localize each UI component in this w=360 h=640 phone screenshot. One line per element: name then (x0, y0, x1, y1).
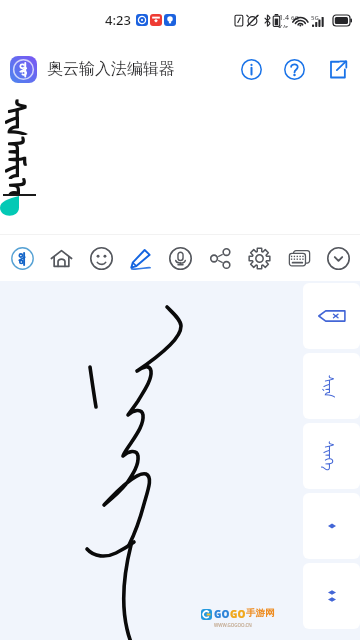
staticText: WWW.GOGOO.CN (214, 622, 252, 628)
button[interactable]: Keyboard (281, 240, 317, 276)
button[interactable]: Suggestion 2 (303, 423, 360, 489)
staticText: 手游网 (246, 607, 275, 619)
button[interactable]: App icon (10, 56, 37, 83)
staticText: ᠰᠢᠨ (6, 98, 46, 134)
button[interactable]: Collapse (320, 240, 356, 276)
button[interactable]: Emoji (83, 240, 119, 276)
staticText: 1.4 (279, 13, 289, 23)
staticText: 6G (291, 14, 299, 22)
staticText: GO (214, 607, 230, 621)
staticText: ᠰᠢᠨᠡ (321, 375, 343, 398)
button[interactable]: Handwriting (122, 240, 158, 276)
button[interactable]: Share (202, 240, 238, 276)
staticText: GO (230, 607, 246, 621)
button[interactable]: Dot (303, 493, 360, 559)
button[interactable]: Backspace (303, 283, 360, 349)
button[interactable]: Voice input (162, 240, 198, 276)
button[interactable]: Settings (241, 240, 277, 276)
button[interactable]: Help (279, 54, 309, 84)
staticText: ᠤ (6, 178, 46, 195)
staticText: ᠰᠢᠨ (5, 98, 45, 134)
staticText: K/s (278, 23, 289, 28)
staticText: ᠤ (5, 178, 45, 195)
staticText: ᠰᠢᠨ (6, 99, 46, 135)
button[interactable]: Suggestion 1 (303, 353, 360, 419)
staticText: 5G (311, 14, 319, 22)
button[interactable]: Share (322, 54, 352, 84)
staticText: ᠤ (6, 177, 46, 194)
button[interactable]: Mongolian input (4, 240, 40, 276)
staticText: 奥云输入法编辑器 (47, 59, 175, 79)
button[interactable]: Home (43, 240, 79, 276)
staticText: ᠰᠢᠨᠭᠡ (321, 441, 343, 471)
staticText: ᠠᠮᠢᠨ (5, 137, 45, 179)
staticText: ᠠᠮᠢᠨ (6, 137, 46, 179)
staticText: 4:23 (105, 11, 131, 29)
staticText: ᠠᠮᠢᠨ (5, 136, 45, 178)
button[interactable]: Double dot (303, 563, 360, 629)
staticText: ᠠᠮᠢᠨ (6, 136, 46, 178)
staticText: ᠤ (5, 177, 45, 194)
button[interactable]: Info (236, 54, 266, 84)
staticText: ᠰᠢᠨ (5, 99, 45, 135)
